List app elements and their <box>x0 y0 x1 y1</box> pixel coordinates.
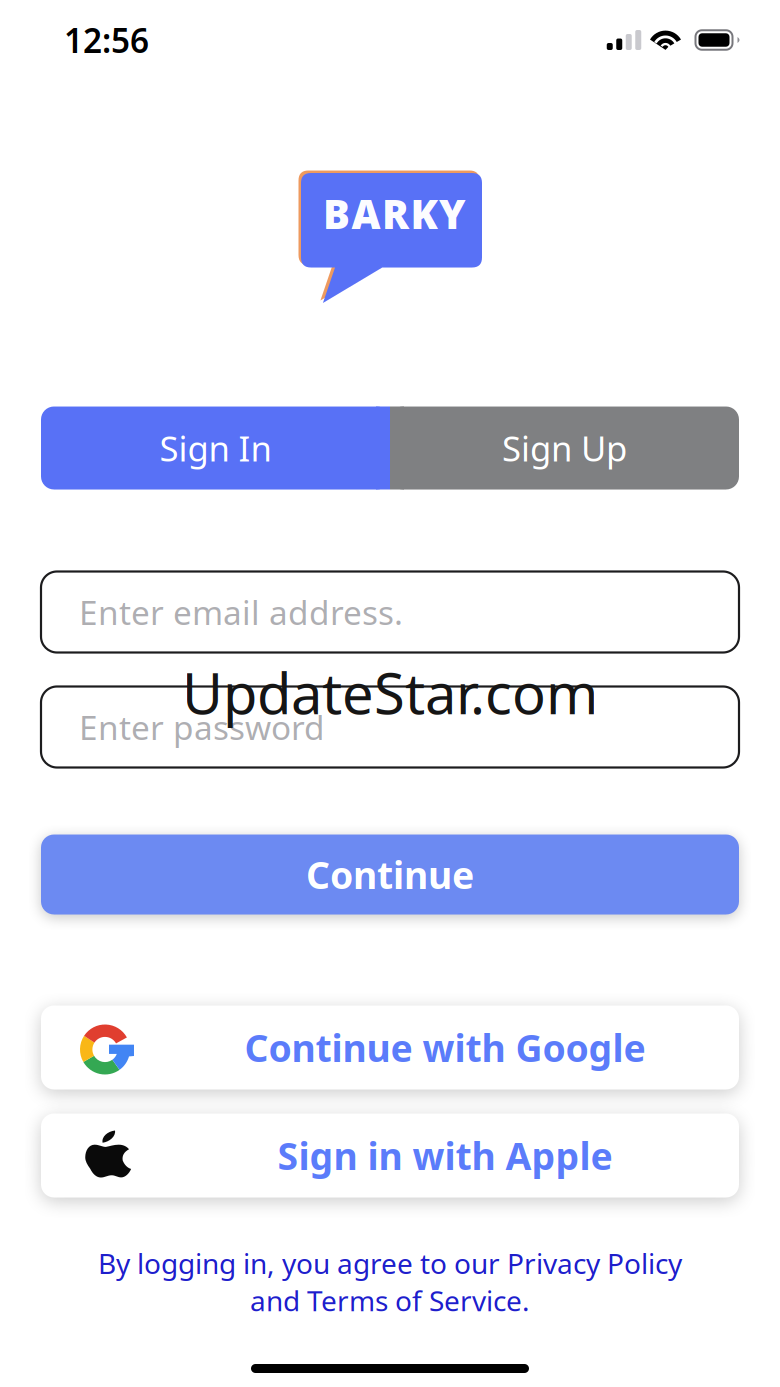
staticText: and Terms of Service. <box>250 1282 530 1319</box>
staticText: Sign in with Apple <box>277 1131 612 1180</box>
button[interactable]: Sign in with Apple <box>41 1113 739 1197</box>
staticText: Enter email address. <box>79 590 403 634</box>
staticText: 12:56 <box>64 18 149 62</box>
staticText: Enter password <box>79 705 325 749</box>
button[interactable]: Sign In <box>41 406 390 489</box>
button[interactable]: Sign Up <box>390 406 739 489</box>
staticText: Sign In <box>159 425 271 471</box>
staticText: UpdateStar.com <box>182 655 598 730</box>
staticText: Sign Up <box>502 425 627 471</box>
staticText: BARKY <box>323 187 466 240</box>
staticText: Continue with Google <box>244 1023 645 1072</box>
staticText: Continue <box>306 850 474 899</box>
button[interactable]: By logging in, you agree to our Privacy … <box>58 1244 722 1319</box>
staticText: By logging in, you agree to our Privacy … <box>98 1244 682 1282</box>
button[interactable]: Continue <box>41 834 739 914</box>
button[interactable]: Continue with Google <box>41 1005 739 1089</box>
